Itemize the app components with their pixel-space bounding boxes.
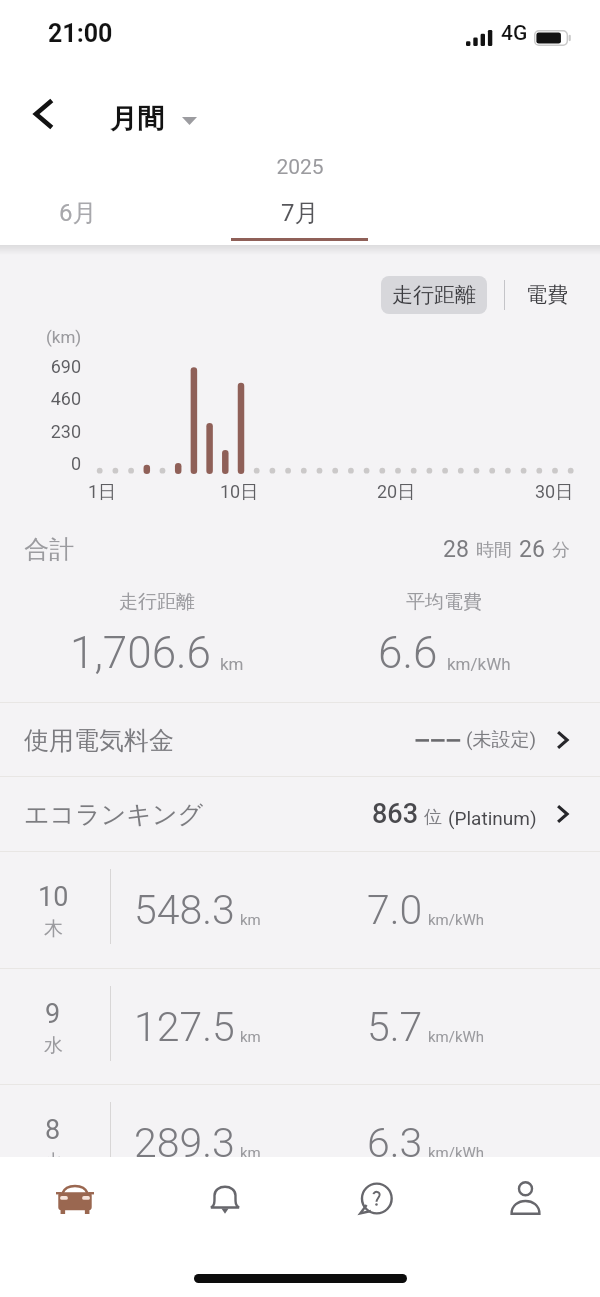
staticText: km — [220, 654, 244, 674]
staticText: 1日 — [88, 481, 117, 504]
staticText: 4G — [501, 21, 528, 46]
staticText: 548.3 — [134, 886, 235, 934]
staticText: 使用電気料金 — [24, 725, 174, 756]
staticText: 月間 — [110, 102, 164, 136]
staticText: 127.5 — [134, 1003, 235, 1051]
staticText: 863 — [372, 798, 419, 830]
staticText: (km) — [46, 327, 82, 347]
button[interactable]: 使用電気料金 — [0, 703, 600, 777]
button[interactable]: 10 — [0, 852, 600, 968]
staticText: km/kWh — [428, 1144, 485, 1162]
staticText: 6.3 — [367, 1119, 423, 1167]
staticText: km — [240, 911, 261, 929]
button[interactable]: 月間 — [104, 96, 203, 142]
staticText: km/kWh — [428, 1028, 485, 1046]
staticText: km — [240, 1144, 261, 1162]
button[interactable]: 7月 — [222, 186, 378, 240]
button[interactable]: Back — [22, 93, 64, 135]
button[interactable]: 6月 — [0, 186, 156, 240]
staticText: 平均電費 — [406, 590, 482, 614]
staticText: 走行距離 — [392, 282, 476, 308]
staticText: 1,706.6 — [70, 627, 211, 679]
staticText: 6.6 — [378, 627, 438, 679]
staticText: km/kWh — [428, 911, 485, 929]
staticText: (Platinum) — [448, 807, 537, 829]
button[interactable]: Notifications — [150, 1157, 300, 1239]
staticText: 7月 — [281, 198, 319, 228]
staticText: 289.3 — [134, 1119, 235, 1167]
button[interactable]: Vehicle — [0, 1157, 150, 1239]
staticText: 8 — [45, 1114, 61, 1146]
staticText: 7.0 — [367, 886, 423, 934]
staticText: 460 — [20, 388, 81, 409]
staticText: 30日 — [535, 481, 574, 504]
staticText: 9 — [45, 998, 61, 1030]
staticText: 木 — [44, 917, 63, 941]
staticText: 位 — [424, 806, 442, 829]
staticText: km/kWh — [447, 654, 511, 674]
staticText: 10 — [38, 881, 69, 913]
staticText: 電費 — [526, 282, 568, 308]
staticText: 28 — [443, 536, 469, 563]
button[interactable]: 電費 — [522, 276, 572, 314]
staticText: 走行距離 — [119, 590, 195, 614]
button[interactable]: 9 — [0, 969, 600, 1085]
staticText: 火 — [44, 1150, 63, 1174]
staticText: 26 — [519, 536, 545, 563]
staticText: 水 — [44, 1034, 63, 1058]
staticText: 5.7 — [367, 1003, 423, 1051]
staticText: 20日 — [377, 481, 416, 504]
staticText: 10日 — [220, 481, 259, 504]
button[interactable]: Help — [300, 1157, 450, 1239]
staticText: 分 — [552, 539, 570, 562]
button[interactable]: 8 — [0, 1085, 600, 1201]
staticText: 合計 — [24, 534, 74, 565]
staticText: 21:00 — [48, 19, 113, 48]
staticText: 690 — [20, 356, 81, 377]
staticText: 時間 — [476, 539, 512, 562]
staticText: 230 — [20, 421, 81, 442]
staticText: 2025 — [0, 155, 600, 180]
staticText: (未設定) — [466, 728, 537, 752]
staticText: エコランキング — [24, 799, 204, 830]
staticText: km — [240, 1028, 261, 1046]
button[interactable]: 走行距離 — [381, 276, 487, 314]
button[interactable]: Account — [450, 1157, 600, 1239]
staticText: 6月 — [59, 198, 97, 228]
staticText: 0 — [20, 453, 81, 474]
button[interactable]: エコランキング — [0, 777, 600, 851]
